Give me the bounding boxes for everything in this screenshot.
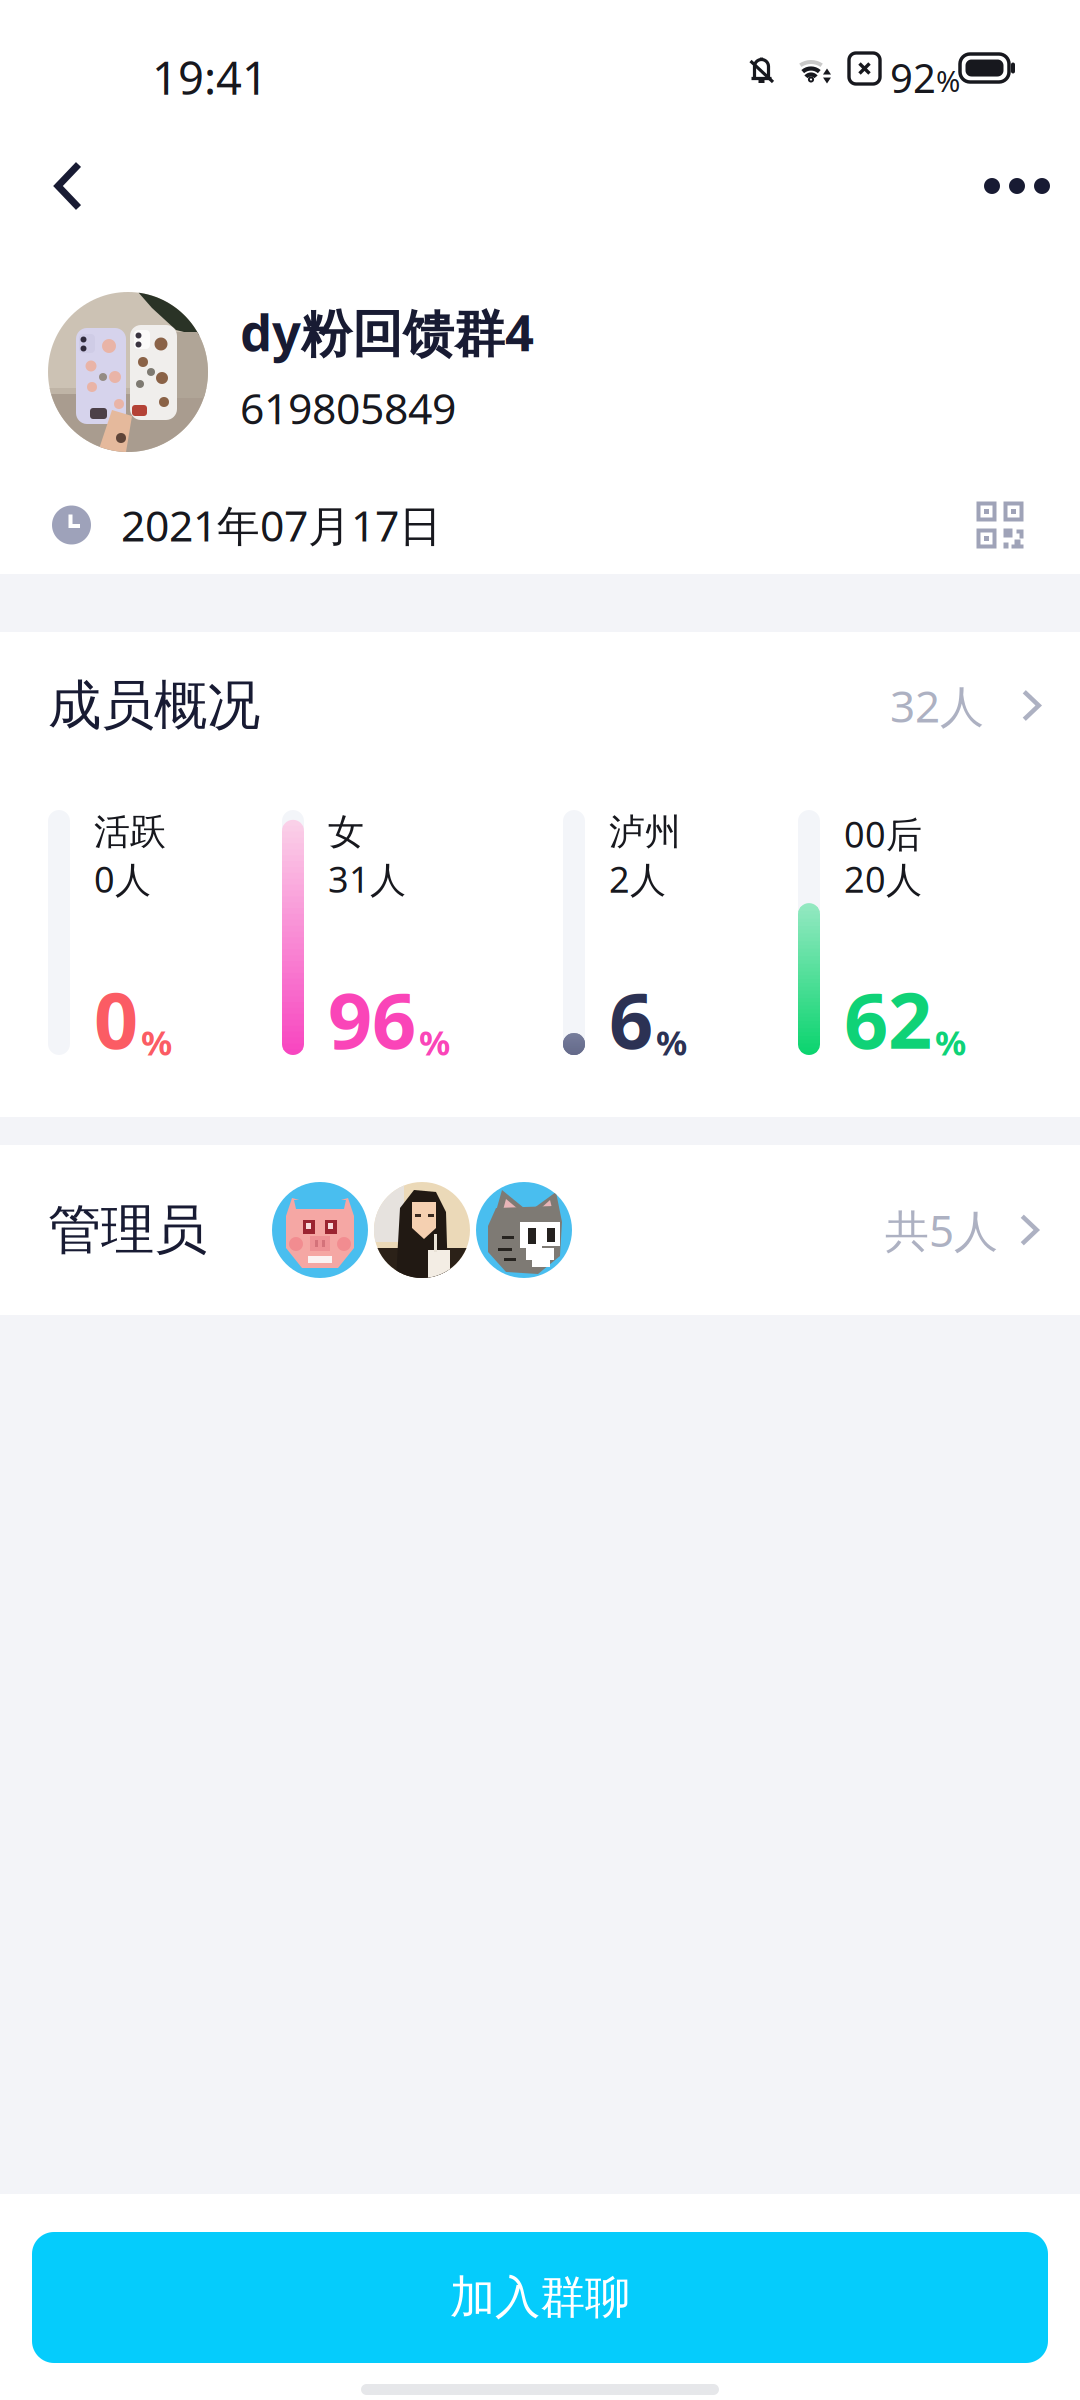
staticText: 2021年07月17日 — [121, 497, 442, 553]
button[interactable]: Group QR code — [970, 497, 1030, 553]
staticText: % — [419, 1019, 450, 1065]
staticText: 加入群聊 — [450, 2270, 630, 2325]
staticText: 92 — [890, 51, 936, 104]
staticText: 32人 — [890, 676, 984, 735]
staticText: % — [656, 1019, 687, 1065]
staticText: 96 — [328, 967, 416, 1070]
staticText: 62 — [844, 967, 932, 1070]
button[interactable]: More options — [962, 136, 1072, 236]
staticText: 共5人 — [885, 1201, 998, 1259]
staticText: 20人 — [844, 855, 922, 903]
staticText: 6 — [609, 967, 653, 1070]
staticText: 2人 — [609, 855, 666, 903]
staticText: dy粉回馈群4 — [240, 298, 534, 365]
button[interactable]: 加入群聊 — [32, 2232, 1048, 2363]
button[interactable]: 管理员 — [0, 1145, 1080, 1315]
staticText: % — [141, 1019, 172, 1065]
staticText: 31人 — [328, 855, 406, 903]
staticText: 管理员 — [48, 1197, 207, 1263]
button[interactable]: Back — [20, 136, 116, 236]
staticText: 19:41 — [152, 47, 268, 107]
staticText: 0人 — [94, 855, 151, 903]
button[interactable]: 成员概况 — [0, 632, 1080, 779]
staticText: 619805849 — [240, 379, 456, 436]
staticText: 女 — [328, 810, 364, 854]
staticText: 00后 — [844, 810, 922, 858]
staticText: % — [936, 61, 960, 100]
staticText: 成员概况 — [48, 673, 260, 738]
staticText: 泸州 — [609, 810, 681, 854]
staticText: % — [935, 1019, 966, 1065]
staticText: 0 — [94, 967, 138, 1070]
staticText: 活跃 — [94, 810, 166, 854]
